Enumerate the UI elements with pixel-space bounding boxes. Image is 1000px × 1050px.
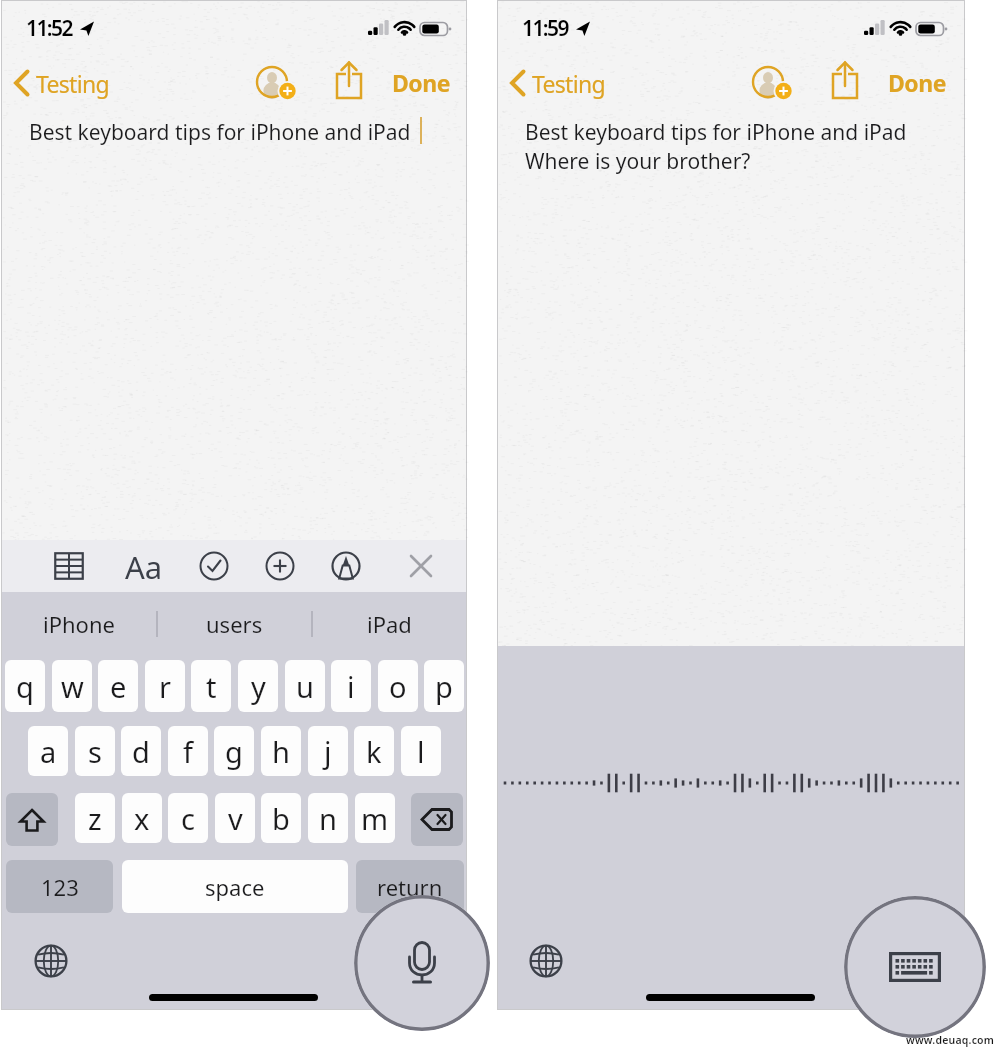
button[interactable]: Checklist: [193, 545, 235, 587]
button[interactable]: m: [355, 793, 395, 843]
button[interactable]: l: [401, 726, 441, 776]
button[interactable]: Done: [888, 63, 960, 101]
staticText: f: [183, 732, 193, 771]
button[interactable]: o: [378, 660, 418, 712]
staticText: c: [181, 799, 195, 838]
button[interactable]: v: [215, 793, 255, 843]
staticText: iPad: [367, 609, 412, 639]
staticText: Best keyboard tips for iPhone and iPad: [525, 118, 907, 147]
button[interactable]: Keyboard: [844, 896, 986, 1038]
staticText: h: [272, 732, 290, 771]
button[interactable]: Dictate: [354, 895, 490, 1031]
staticText: d: [132, 732, 150, 771]
button[interactable]: iPad: [313, 600, 466, 648]
button[interactable]: Switch keyboard: [526, 941, 566, 981]
staticText: www.deuaq.com: [906, 1033, 995, 1047]
staticText: n: [319, 799, 337, 838]
button[interactable]: Share: [828, 57, 864, 103]
button[interactable]: Testing: [508, 61, 643, 105]
staticText: t: [206, 667, 217, 706]
staticText: 11:59: [522, 14, 568, 43]
button[interactable]: x: [122, 793, 162, 843]
staticText: Aa: [125, 546, 163, 588]
button[interactable]: z: [75, 793, 115, 843]
button[interactable]: b: [261, 793, 301, 843]
staticText: i: [347, 667, 355, 706]
button[interactable]: r: [145, 660, 185, 712]
button[interactable]: Add: [259, 545, 301, 587]
button[interactable]: Shift: [6, 793, 58, 846]
staticText: m: [361, 799, 389, 838]
button[interactable]: Switch keyboard: [31, 941, 71, 981]
button[interactable]: Done: [392, 63, 464, 101]
button[interactable]: t: [191, 660, 231, 712]
button[interactable]: users: [158, 600, 311, 648]
staticText: k: [366, 732, 382, 771]
button[interactable]: y: [238, 660, 278, 712]
button[interactable]: s: [75, 726, 115, 776]
staticText: Where is your brother?: [525, 147, 751, 176]
staticText: a: [40, 732, 57, 771]
button[interactable]: e: [98, 660, 138, 712]
button[interactable]: f: [168, 726, 208, 776]
button[interactable]: space: [122, 860, 348, 913]
button[interactable]: Close: [400, 545, 442, 587]
button[interactable]: Markup: [325, 545, 367, 587]
button[interactable]: Aa: [120, 543, 168, 591]
button[interactable]: n: [308, 793, 348, 843]
button[interactable]: p: [424, 660, 464, 712]
staticText: return: [377, 872, 443, 902]
button[interactable]: d: [121, 726, 161, 776]
staticText: r: [159, 667, 171, 706]
button[interactable]: Add person: [254, 62, 300, 108]
staticText: Testing: [532, 68, 605, 99]
button[interactable]: g: [214, 726, 254, 776]
staticText: q: [16, 667, 34, 706]
button[interactable]: k: [354, 726, 394, 776]
staticText: y: [251, 667, 266, 706]
staticText: g: [225, 732, 243, 771]
staticText: users: [206, 609, 263, 639]
staticText: e: [110, 667, 127, 706]
staticText: u: [296, 667, 314, 706]
staticText: x: [134, 799, 150, 838]
staticText: space: [205, 872, 265, 902]
staticText: s: [88, 732, 102, 771]
staticText: 11:52: [26, 14, 72, 43]
staticText: j: [324, 732, 332, 771]
button[interactable]: Share: [332, 57, 368, 103]
button[interactable]: Table: [48, 545, 90, 587]
staticText: b: [272, 799, 290, 838]
button[interactable]: Testing: [12, 61, 147, 105]
button[interactable]: return: [356, 860, 464, 913]
button[interactable]: u: [285, 660, 325, 712]
staticText: v: [228, 799, 243, 838]
staticText: p: [435, 667, 453, 706]
staticText: l: [417, 732, 425, 771]
button[interactable]: q: [5, 660, 45, 712]
staticText: w: [61, 667, 84, 706]
button[interactable]: a: [28, 726, 68, 776]
staticText: o: [389, 667, 407, 706]
staticText: Testing: [36, 68, 109, 99]
button[interactable]: Add person: [750, 62, 796, 108]
button[interactable]: 123: [6, 860, 113, 913]
staticText: z: [88, 799, 102, 838]
staticText: 123: [41, 872, 79, 902]
button[interactable]: iPhone: [2, 600, 156, 648]
button[interactable]: w: [52, 660, 92, 712]
staticText: Best keyboard tips for iPhone and iPad: [29, 118, 411, 147]
button[interactable]: h: [261, 726, 301, 776]
button[interactable]: c: [168, 793, 208, 843]
staticText: Done: [888, 67, 946, 98]
staticText: iPhone: [43, 609, 115, 639]
button[interactable]: Backspace: [411, 793, 463, 846]
button[interactable]: j: [308, 726, 348, 776]
button[interactable]: i: [331, 660, 371, 712]
staticText: Done: [392, 67, 450, 98]
